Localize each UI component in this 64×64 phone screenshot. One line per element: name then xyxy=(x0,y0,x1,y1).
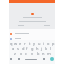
staticText: f xyxy=(26,46,28,51)
staticText: n xyxy=(42,51,45,56)
staticText: o xyxy=(47,41,50,46)
button[interactable]: m xyxy=(47,51,51,56)
staticText: l xyxy=(50,46,52,51)
button[interactable]: a xyxy=(11,46,15,51)
button[interactable]: z xyxy=(13,51,17,56)
staticText: r xyxy=(24,41,26,46)
button[interactable]: h xyxy=(35,46,39,51)
button[interactable]: v xyxy=(30,51,34,56)
staticText: a xyxy=(12,46,15,51)
staticText: m xyxy=(47,51,51,56)
button[interactable]: t xyxy=(28,41,32,46)
button[interactable]: n xyxy=(41,51,45,56)
staticText: p xyxy=(52,41,55,46)
button[interactable]: e xyxy=(18,41,22,46)
staticText: v xyxy=(31,51,34,56)
staticText: u xyxy=(38,41,41,46)
button[interactable]: w xyxy=(14,41,18,46)
button[interactable]: c xyxy=(24,51,28,56)
button[interactable]: f xyxy=(25,46,29,51)
button[interactable]: g xyxy=(30,46,34,51)
button[interactable] xyxy=(25,59,37,60)
button[interactable]: x xyxy=(19,51,23,56)
button[interactable]: y xyxy=(32,41,36,46)
staticText: g xyxy=(31,46,34,51)
staticText: k xyxy=(45,46,48,51)
staticText: t xyxy=(29,41,31,46)
staticText: h xyxy=(36,46,39,51)
button[interactable] xyxy=(10,37,55,40)
button[interactable]: p xyxy=(51,41,55,46)
staticText: s xyxy=(17,46,19,51)
button[interactable]: b xyxy=(36,51,40,56)
staticText: e xyxy=(19,41,22,46)
staticText: q xyxy=(10,41,13,46)
button[interactable]: Send xyxy=(50,57,54,61)
button[interactable]: k xyxy=(44,46,48,51)
button[interactable]: u xyxy=(37,41,41,46)
staticText: x xyxy=(20,51,23,56)
staticText: d xyxy=(22,46,25,51)
button[interactable]: r xyxy=(23,41,27,46)
staticText: i xyxy=(43,41,45,46)
button[interactable]: o xyxy=(46,41,50,46)
button[interactable]: l xyxy=(49,46,53,51)
button[interactable]: s xyxy=(16,46,20,51)
button[interactable] xyxy=(10,32,55,35)
button[interactable]: j xyxy=(40,46,44,51)
button[interactable]: d xyxy=(21,46,25,51)
staticText: y xyxy=(33,41,36,46)
staticText: b xyxy=(37,51,40,56)
staticText: c xyxy=(25,51,27,56)
button[interactable]: i xyxy=(42,41,46,46)
staticText: w xyxy=(14,41,18,46)
staticText: z xyxy=(14,51,16,56)
staticText: j xyxy=(41,46,43,51)
button[interactable]: q xyxy=(9,41,13,46)
